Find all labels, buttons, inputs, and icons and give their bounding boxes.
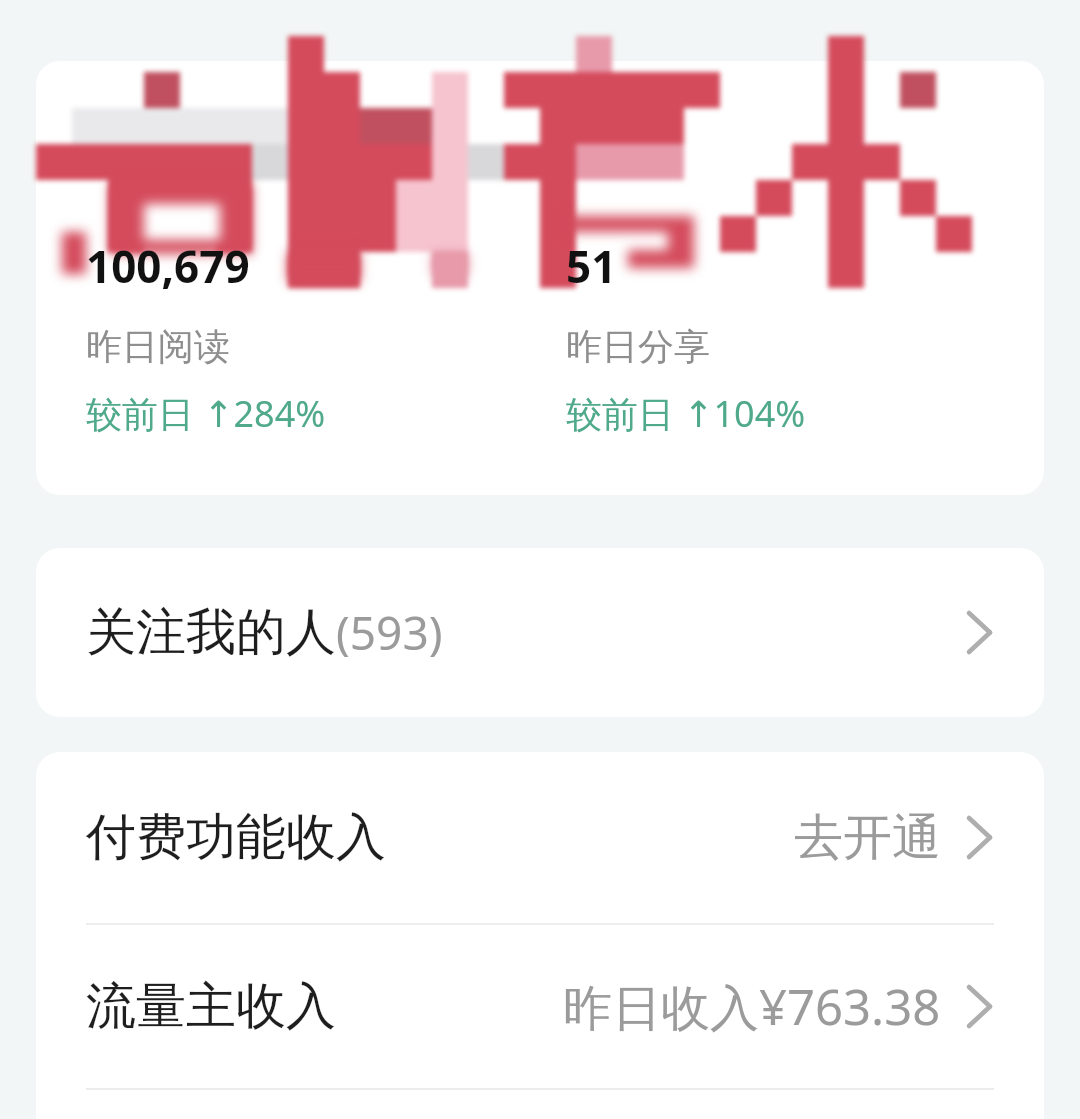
staticText: 付费功能收入 [86, 806, 386, 869]
staticText: 较前日 ↑104% [566, 389, 806, 438]
staticText: 流量主收入 [86, 975, 336, 1038]
staticText: 51 [566, 236, 617, 296]
staticText: 较前日 ↑284% [86, 389, 326, 438]
staticText: 昨日收入¥763.38 [563, 973, 941, 1040]
staticText: 昨日分享 [566, 324, 710, 369]
button[interactable]: 付费功能收入 [36, 752, 1044, 923]
button[interactable]: 流量主收入 [36, 925, 1044, 1088]
staticText: 去开通 [794, 807, 941, 869]
button[interactable]: 关注我的人 [36, 548, 1044, 717]
staticText: 昨日阅读 [86, 324, 230, 369]
staticText: 关注我的人 [86, 601, 336, 664]
staticText: (593) [336, 601, 443, 664]
staticText: 100,679 [86, 236, 250, 296]
